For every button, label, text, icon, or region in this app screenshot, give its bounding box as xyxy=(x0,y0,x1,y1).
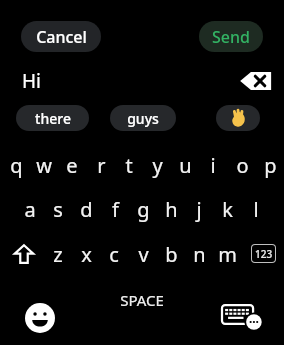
staticText: x xyxy=(81,241,92,268)
button[interactable]: x xyxy=(71,238,101,270)
staticText: o xyxy=(236,152,249,179)
button[interactable]: a xyxy=(15,193,45,225)
button[interactable]: Numbers and symbols xyxy=(250,242,276,264)
button[interactable]: Emoji xyxy=(18,296,62,340)
staticText: s xyxy=(53,196,63,223)
staticText: 123 xyxy=(255,247,273,261)
staticText: r xyxy=(97,152,106,179)
button[interactable]: o xyxy=(227,149,257,181)
button[interactable]: q xyxy=(1,149,31,181)
button[interactable]: j xyxy=(184,193,214,225)
staticText: y xyxy=(152,152,163,179)
button[interactable]: m xyxy=(212,238,242,270)
staticText: k xyxy=(222,196,233,223)
button[interactable]: SPACE xyxy=(92,285,192,315)
button[interactable]: u xyxy=(170,149,200,181)
button[interactable]: Cancel xyxy=(21,21,101,52)
button[interactable]: r xyxy=(86,149,116,181)
staticText: there xyxy=(35,109,71,128)
button[interactable]: p xyxy=(255,149,284,181)
button[interactable]: Backspace xyxy=(238,67,274,95)
staticText: guys xyxy=(127,109,159,128)
staticText: j xyxy=(196,196,202,223)
staticText: l xyxy=(253,196,259,223)
button[interactable]: z xyxy=(43,238,73,270)
staticText: Hi xyxy=(22,68,41,94)
staticText: t xyxy=(125,152,133,179)
button[interactable]: c xyxy=(99,238,129,270)
staticText: h xyxy=(165,196,178,223)
button[interactable]: e xyxy=(57,149,87,181)
staticText: q xyxy=(10,152,23,179)
button[interactable]: s xyxy=(43,193,73,225)
button[interactable]: guys xyxy=(110,105,176,131)
staticText: w xyxy=(36,152,52,179)
button[interactable]: k xyxy=(212,193,242,225)
button[interactable]: d xyxy=(71,193,101,225)
staticText: SPACE xyxy=(120,290,164,310)
staticText: Cancel xyxy=(36,26,87,48)
button[interactable]: y xyxy=(142,149,172,181)
staticText: b xyxy=(165,241,178,268)
staticText: c xyxy=(109,241,119,268)
button[interactable]: Hi xyxy=(22,66,212,96)
button[interactable]: Shift xyxy=(7,238,41,270)
staticText: p xyxy=(264,152,277,179)
button[interactable]: l xyxy=(241,193,271,225)
staticText: a xyxy=(24,196,36,223)
button[interactable]: b xyxy=(156,238,186,270)
button[interactable]: there xyxy=(16,105,89,131)
button[interactable]: f xyxy=(100,193,130,225)
button[interactable]: g xyxy=(128,193,158,225)
staticText: m xyxy=(218,241,237,268)
button[interactable]: Change keyboard xyxy=(218,294,268,338)
staticText: v xyxy=(138,241,149,268)
button[interactable]: w xyxy=(29,149,59,181)
staticText: z xyxy=(53,241,63,268)
staticText: d xyxy=(80,196,93,223)
staticText: f xyxy=(112,196,119,223)
staticText: u xyxy=(179,152,192,179)
staticText: Send xyxy=(212,26,250,48)
button[interactable]: i xyxy=(198,149,228,181)
button[interactable]: n xyxy=(184,238,214,270)
staticText: e xyxy=(66,152,78,179)
staticText: n xyxy=(193,241,206,268)
button[interactable]: Send xyxy=(199,21,263,52)
staticText: g xyxy=(137,196,150,223)
button[interactable]: t xyxy=(114,149,144,181)
button[interactable]: v xyxy=(128,238,158,270)
staticText: i xyxy=(210,152,216,179)
button[interactable]: h xyxy=(156,193,186,225)
button[interactable]: Waving hand emoji xyxy=(216,105,260,131)
